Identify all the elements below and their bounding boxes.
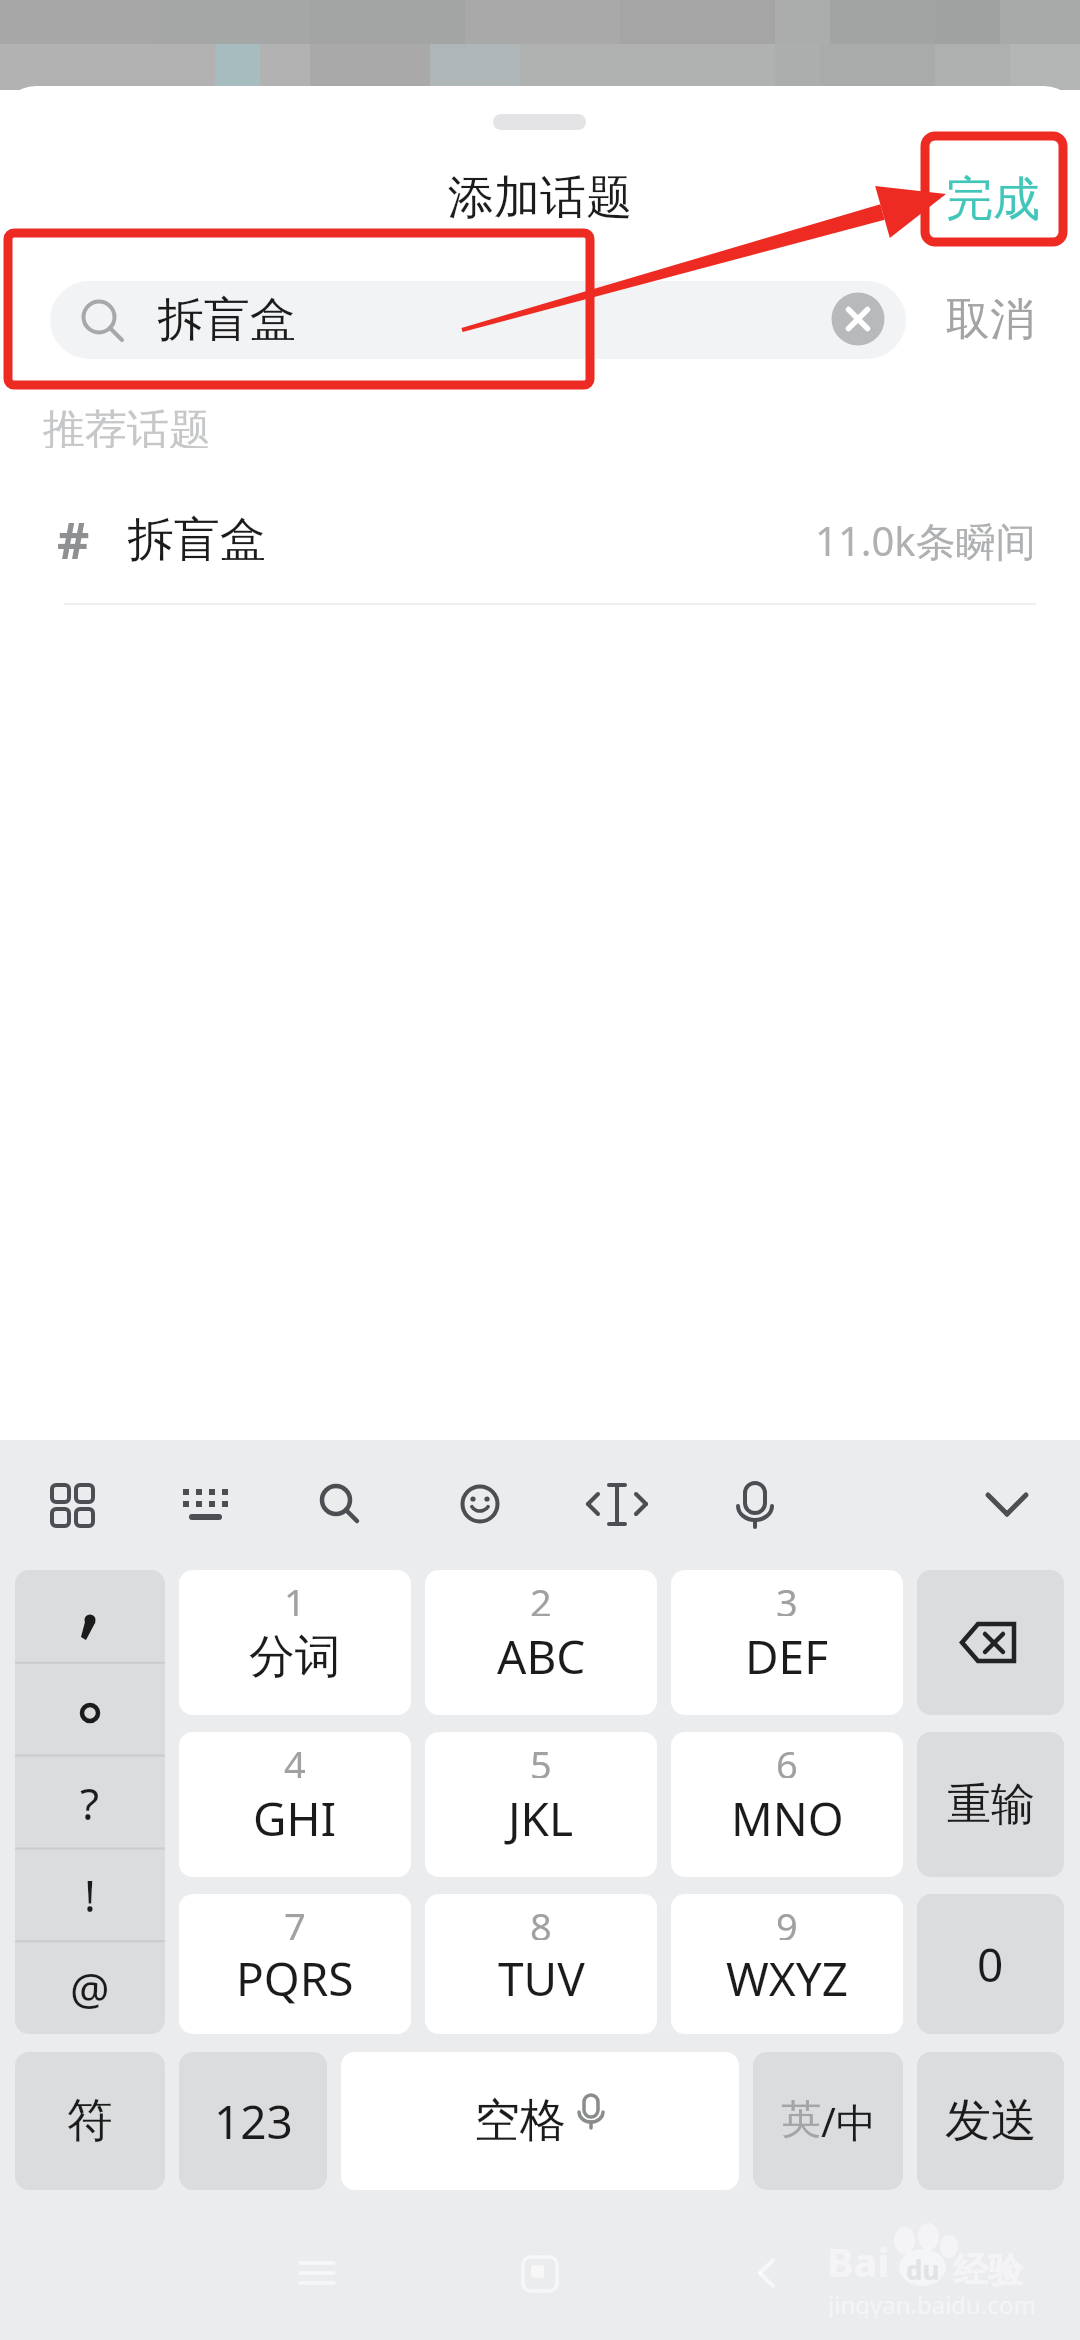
staticText: 发送 <box>945 2092 1037 2150</box>
button[interactable]: 2 <box>425 1570 657 1715</box>
button[interactable] <box>50 281 906 359</box>
button[interactable]: 重输 <box>917 1732 1064 1877</box>
staticText: 空格 <box>474 2092 566 2150</box>
staticText: 符 <box>67 2092 113 2150</box>
staticText: GHI <box>253 1787 337 1850</box>
button[interactable]: 1 <box>179 1570 411 1715</box>
staticText: DEF <box>745 1625 829 1688</box>
staticText: 1 <box>284 1576 306 1616</box>
button[interactable]: # <box>0 495 1080 585</box>
staticText: du <box>906 2252 940 2284</box>
staticText: /中 <box>821 2094 876 2149</box>
staticText: ? <box>80 1773 100 1833</box>
staticText: 11.0k条瞬间 <box>815 513 1036 568</box>
staticText: jingyan.baidu.com <box>828 2288 1036 2318</box>
staticText: 经验 <box>953 2248 1023 2288</box>
button[interactable]: 6 <box>671 1732 903 1877</box>
button[interactable]: 完成 <box>920 168 1065 230</box>
staticText: Bai <box>827 2234 890 2286</box>
staticText: 2 <box>530 1576 552 1616</box>
button[interactable]: 取消 <box>930 285 1050 353</box>
staticText: 推荐话题 <box>43 404 211 448</box>
staticText: 完成 <box>946 170 1040 229</box>
button[interactable]: 5 <box>425 1732 657 1877</box>
staticText: # <box>57 506 90 574</box>
staticText: 4 <box>284 1738 306 1778</box>
button[interactable]: 英 <box>753 2052 903 2190</box>
button[interactable]: 4 <box>179 1732 411 1877</box>
staticText: 英 <box>781 2094 821 2144</box>
button[interactable]: 空格 <box>341 2052 739 2190</box>
button[interactable]: 0 <box>917 1894 1064 2034</box>
button[interactable]: 符 <box>15 2052 165 2190</box>
button[interactable]: 3 <box>671 1570 903 1715</box>
staticText: 8 <box>530 1900 552 1940</box>
staticText: PQRS <box>236 1947 354 2010</box>
button[interactable]: ? <box>15 1570 165 2034</box>
staticText: MNO <box>731 1787 844 1850</box>
staticText: TUV <box>498 1947 585 2010</box>
staticText: @ <box>70 1958 110 2018</box>
staticText: 分词 <box>249 1628 341 1686</box>
staticText: 6 <box>776 1738 798 1778</box>
staticText: 7 <box>284 1900 306 1940</box>
staticText: 3 <box>776 1576 798 1616</box>
staticText: 5 <box>530 1738 552 1778</box>
button[interactable] <box>917 1570 1064 1715</box>
button[interactable]: 7 <box>179 1894 411 2034</box>
button[interactable]: 123 <box>179 2052 327 2190</box>
staticText: ! <box>84 1865 96 1925</box>
staticText: JKL <box>508 1787 574 1850</box>
staticText: 9 <box>776 1900 798 1940</box>
button[interactable]: 8 <box>425 1894 657 2034</box>
staticText: 添加话题 <box>448 169 632 227</box>
staticText: WXYZ <box>726 1947 849 2010</box>
button[interactable]: 9 <box>671 1894 903 2034</box>
staticText: 0 <box>977 1933 1004 1996</box>
staticText: 拆盲盒 <box>128 511 266 569</box>
button[interactable]: 发送 <box>917 2052 1064 2190</box>
staticText: 拆盲盒 <box>158 291 296 349</box>
staticText: 取消 <box>946 292 1034 347</box>
staticText: 重输 <box>947 1777 1035 1832</box>
staticText: 123 <box>214 2090 293 2153</box>
staticText: ABC <box>497 1625 586 1688</box>
